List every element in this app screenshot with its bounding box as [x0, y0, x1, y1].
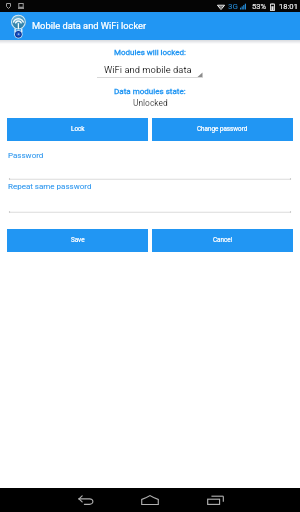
button[interactable]: Cancel [152, 229, 293, 252]
button[interactable]: WiFi and mobile data [97, 63, 203, 78]
button[interactable]: Change password [152, 118, 293, 141]
button[interactable]: Save [7, 229, 148, 252]
staticText: WiFi and mobile data [104, 64, 192, 75]
staticText: Save [71, 236, 85, 243]
staticText: 18:01 [279, 2, 298, 11]
button[interactable]: Back [66, 488, 106, 512]
staticText: Data modules state: [114, 87, 186, 96]
staticText: Change password [197, 125, 248, 132]
staticText: Lock [71, 125, 85, 132]
staticText: Password [8, 151, 44, 160]
staticText: Cancel [213, 236, 233, 243]
staticText: 3G [228, 2, 238, 11]
button[interactable]: Lock [7, 118, 148, 141]
button[interactable]: Home [130, 488, 170, 512]
staticText: 53% [252, 2, 267, 11]
staticText: Modules will locked: [114, 48, 186, 57]
staticText: Unlocked [133, 98, 168, 108]
staticText: Repeat same password [8, 182, 92, 191]
staticText: Mobile data and WiFi locker [32, 20, 147, 31]
button[interactable]: Recent apps [195, 488, 235, 512]
